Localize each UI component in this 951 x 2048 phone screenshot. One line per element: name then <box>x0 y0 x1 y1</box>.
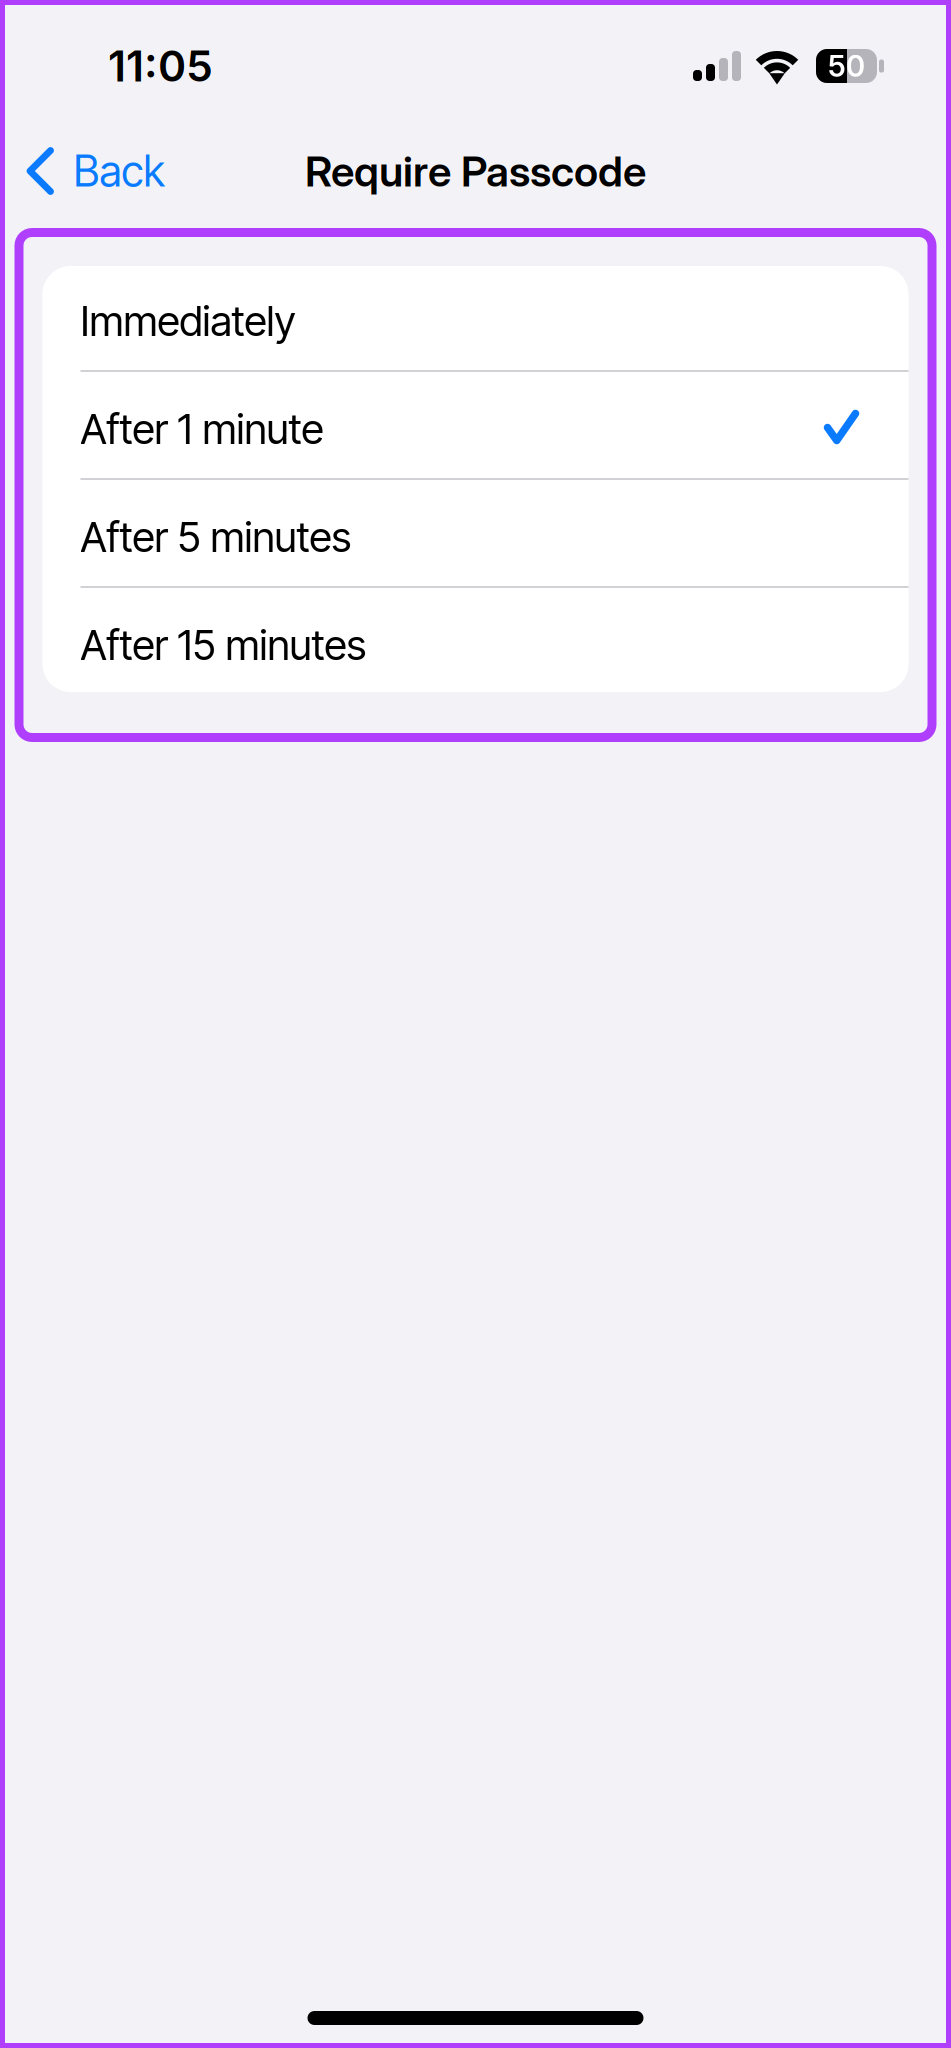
staticText: 11:05 <box>108 40 213 92</box>
button[interactable]: After 15 minutes <box>42 588 908 694</box>
button[interactable]: Immediately <box>42 264 908 370</box>
staticText: After 1 minute <box>80 404 323 454</box>
staticText: Back <box>73 145 164 197</box>
staticText: Require Passcode <box>305 145 646 196</box>
button[interactable]: After 5 minutes <box>42 480 908 586</box>
staticText: 50 <box>828 48 865 84</box>
button[interactable]: Back <box>0 123 220 219</box>
button[interactable]: After 1 minute <box>42 372 908 478</box>
staticText: Immediately <box>80 296 295 346</box>
staticText: After 5 minutes <box>80 512 351 562</box>
staticText: After 15 minutes <box>80 620 366 670</box>
